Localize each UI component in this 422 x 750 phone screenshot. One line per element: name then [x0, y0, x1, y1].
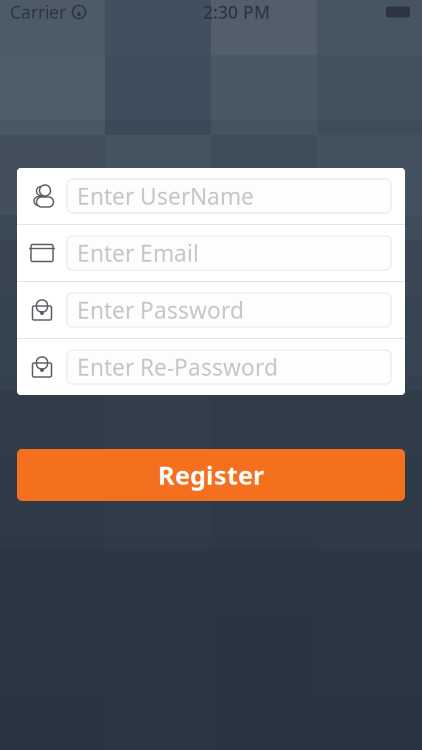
button[interactable]: Enter Email — [17, 225, 405, 281]
staticText: Enter UserName — [77, 181, 254, 211]
staticText: Enter Email — [77, 238, 199, 268]
staticText: Register — [158, 458, 264, 492]
button[interactable]: Enter UserName — [17, 168, 405, 224]
button[interactable]: Enter Password — [17, 282, 405, 338]
button[interactable]: Enter Re-Password — [17, 339, 405, 395]
staticText: Enter Password — [77, 295, 244, 325]
button[interactable]: Register — [17, 449, 405, 501]
staticText: Carrier — [10, 0, 66, 23]
staticText: Enter Re-Password — [77, 352, 278, 382]
staticText: 2:30 PM — [203, 0, 270, 23]
